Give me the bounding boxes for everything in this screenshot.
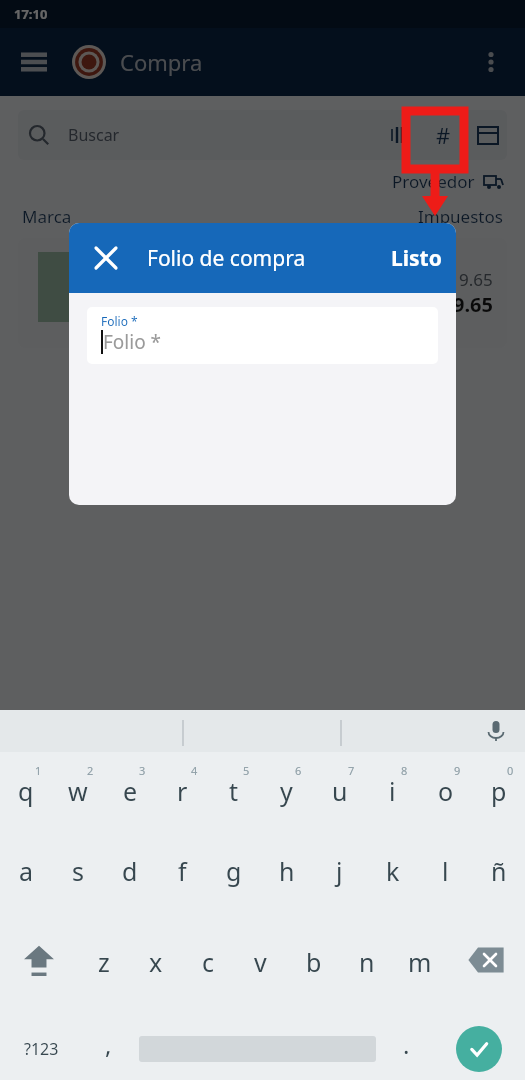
staticText: b	[306, 945, 322, 979]
staticText: ,	[105, 1028, 112, 1061]
staticText: 4	[191, 763, 198, 778]
staticText: n	[359, 945, 375, 979]
staticText: s	[72, 854, 84, 888]
button[interactable]: Backspace	[446, 937, 525, 1007]
button[interactable]: ñ	[472, 847, 525, 922]
button[interactable]: Enter	[432, 1017, 525, 1080]
button[interactable]: n	[340, 937, 393, 1007]
button[interactable]: 6	[260, 762, 313, 837]
staticText: Folio de compra	[147, 244, 306, 273]
staticText: 3	[139, 763, 146, 778]
button[interactable]: v	[234, 937, 287, 1007]
staticText: 0	[507, 763, 514, 778]
staticText: 5	[243, 763, 250, 778]
staticText: d	[122, 854, 138, 888]
staticText: Folio *	[101, 313, 138, 329]
staticText: m	[408, 945, 432, 979]
button[interactable]: Shift	[0, 937, 78, 1007]
staticText: l	[442, 854, 449, 888]
staticText: Impuestos	[418, 205, 503, 228]
staticText: g	[226, 854, 242, 888]
staticText: c	[202, 945, 215, 979]
button[interactable]: Buscar	[18, 110, 507, 160]
staticText: Folio *	[103, 329, 162, 355]
button[interactable]: h	[260, 847, 313, 922]
staticText: 9.65	[453, 291, 493, 318]
staticText: Buscar	[68, 124, 120, 146]
staticText: z	[98, 945, 110, 979]
staticText: x	[149, 945, 163, 979]
staticText: Marca	[22, 205, 72, 228]
staticText: v	[254, 945, 267, 979]
button[interactable]: .	[381, 1017, 432, 1080]
staticText: h	[279, 854, 295, 888]
staticText: .	[403, 1028, 410, 1061]
button[interactable]: 8	[366, 762, 419, 837]
staticText: w	[68, 774, 88, 808]
button[interactable]: 4	[156, 762, 208, 837]
button[interactable]: Menu	[14, 42, 54, 82]
button[interactable]: Close	[83, 235, 129, 281]
staticText: k	[386, 854, 400, 888]
staticText: 17:10	[14, 5, 48, 23]
button[interactable]: z	[78, 937, 130, 1007]
staticText: e	[123, 774, 138, 808]
staticText: Proveedor	[392, 170, 475, 193]
button[interactable]: d	[104, 847, 156, 922]
button[interactable]: f	[156, 847, 208, 922]
staticText: f	[178, 854, 187, 888]
staticText: p	[491, 774, 507, 808]
staticText: 6	[295, 763, 302, 778]
staticText: Listo	[391, 244, 442, 273]
button[interactable]: 2	[52, 762, 104, 837]
staticText: 9.65	[459, 268, 493, 291]
button[interactable]: l	[419, 847, 472, 922]
staticText: o	[438, 774, 454, 808]
staticText: ñ	[491, 854, 507, 888]
button[interactable]: ,	[83, 1017, 134, 1080]
button[interactable]: b	[287, 937, 340, 1007]
button[interactable]: 1	[0, 762, 52, 837]
button[interactable]: 7	[313, 762, 366, 837]
button[interactable]: ?123	[0, 1017, 83, 1080]
button[interactable]: m	[393, 937, 446, 1007]
button[interactable]: 9.65	[18, 238, 507, 348]
staticText: j	[336, 854, 343, 888]
button[interactable]: Listo	[391, 244, 442, 273]
staticText: 9	[454, 763, 461, 778]
button[interactable]: 3	[104, 762, 156, 837]
button[interactable]: Voice input	[479, 714, 513, 748]
staticText: u	[332, 774, 348, 808]
staticText: ?123	[24, 1038, 59, 1060]
button[interactable]: k	[366, 847, 419, 922]
button[interactable]: 0	[472, 762, 525, 837]
staticText: t	[229, 774, 239, 808]
button[interactable]: 9	[419, 762, 472, 837]
button[interactable]: More options	[471, 42, 511, 82]
staticText: Compra	[120, 47, 203, 77]
button[interactable]: x	[130, 937, 182, 1007]
button[interactable]: c	[182, 937, 234, 1007]
staticText: 8	[401, 763, 408, 778]
staticText: 1	[35, 763, 42, 778]
staticText: a	[19, 854, 34, 888]
staticText: 2	[87, 763, 94, 778]
staticText: 7	[348, 763, 355, 778]
button[interactable]: g	[208, 847, 260, 922]
staticText: y	[280, 774, 293, 808]
staticText: #	[436, 120, 451, 150]
staticText: q	[18, 774, 34, 808]
button[interactable]: a	[0, 847, 52, 922]
button[interactable]: j	[313, 847, 366, 922]
button[interactable]: s	[52, 847, 104, 922]
button[interactable]: 5	[208, 762, 260, 837]
button[interactable]: Space	[134, 1017, 381, 1080]
button[interactable]: Folio *	[87, 307, 438, 364]
staticText: r	[177, 774, 188, 808]
staticText: i	[389, 774, 396, 808]
